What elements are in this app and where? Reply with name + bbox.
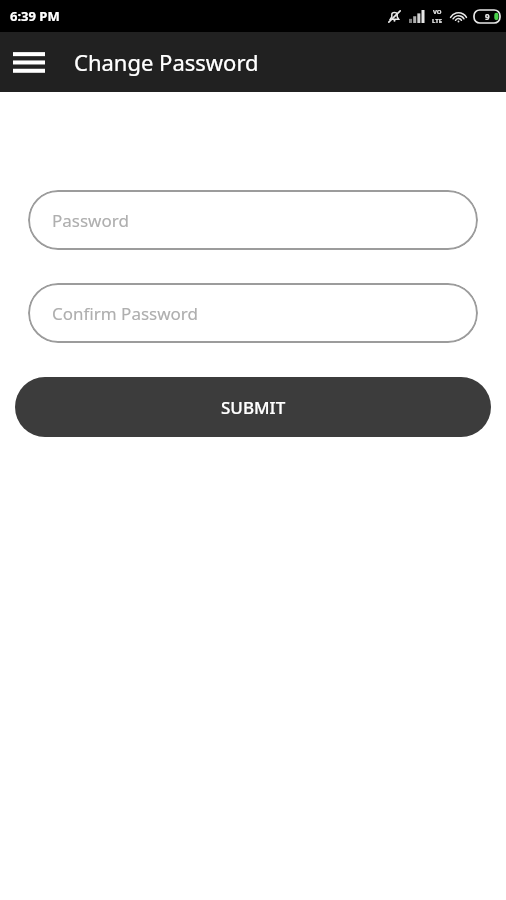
staticText: VO bbox=[433, 8, 442, 16]
button[interactable]: Password bbox=[28, 190, 478, 250]
staticText: SUBMIT bbox=[221, 396, 286, 419]
staticText: LTE bbox=[432, 17, 443, 24]
staticText: Change Password bbox=[74, 47, 259, 77]
staticText: 9 bbox=[485, 11, 490, 22]
staticText: Password bbox=[52, 209, 129, 232]
button[interactable]: SUBMIT bbox=[15, 377, 491, 437]
button[interactable]: Confirm Password bbox=[28, 283, 478, 343]
button[interactable]: Open navigation menu bbox=[7, 40, 51, 84]
staticText: 6:39 PM bbox=[10, 7, 60, 25]
staticText: Confirm Password bbox=[52, 302, 198, 325]
